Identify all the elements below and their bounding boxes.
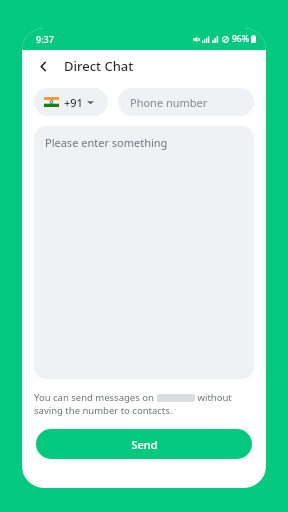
button[interactable]: Send: [36, 429, 252, 459]
button[interactable]: Phone number: [118, 88, 254, 116]
staticText: saving the number to contacts.: [34, 404, 173, 417]
staticText: 96%: [232, 33, 249, 45]
button[interactable]: Back: [30, 53, 56, 79]
staticText: without: [195, 391, 232, 404]
staticText: 9:37: [36, 33, 54, 45]
button[interactable]: +91: [34, 88, 108, 116]
staticText: Direct Chat: [64, 57, 134, 75]
staticText: You can send messages on: [34, 391, 157, 404]
button[interactable]: Please enter something: [34, 126, 254, 379]
staticText: Send: [131, 437, 158, 452]
staticText: Phone number: [130, 95, 208, 110]
staticText: +91: [64, 95, 83, 110]
staticText: Please enter something: [45, 135, 168, 150]
